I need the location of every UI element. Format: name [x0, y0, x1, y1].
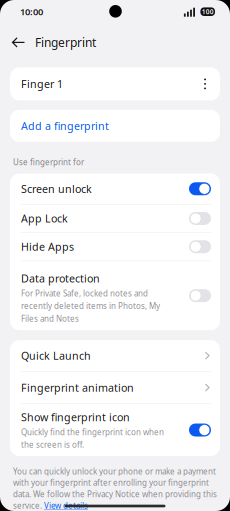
staticText: Use fingerprint for — [13, 157, 84, 167]
button[interactable]: Show fingerprint icon — [10, 404, 220, 456]
button[interactable]: App Lock — [10, 205, 220, 232]
staticText: Quick Launch — [21, 348, 91, 363]
button[interactable]: View details — [44, 500, 88, 511]
button[interactable]: Add a fingerprint — [10, 110, 220, 142]
button[interactable]: Hide Apps — [10, 233, 220, 260]
staticText: with your fingerprint after enrolling yo… — [13, 477, 209, 488]
button[interactable]: Back — [12, 31, 24, 53]
staticText: Finger 1 — [21, 77, 63, 91]
staticText: App Lock — [21, 211, 68, 226]
staticText: View details — [44, 500, 88, 511]
staticText: Data protection — [21, 271, 100, 285]
staticText: Add a fingerprint — [21, 119, 109, 133]
staticText: Show fingerprint icon — [21, 410, 130, 424]
button[interactable]: Data protection — [10, 261, 220, 330]
button[interactable]: Screen unlock — [10, 173, 220, 204]
staticText: Fingerprint — [35, 34, 96, 50]
button[interactable]: Fingerprint animation — [10, 372, 220, 403]
staticText: 10:00 — [20, 5, 43, 18]
button[interactable]: Finger 1 — [10, 67, 220, 100]
staticText: data. We follow the Privacy Notice when … — [13, 489, 217, 499]
staticText: You can quickly unlock your phone or mak… — [13, 466, 216, 477]
staticText: Screen unlock — [21, 182, 92, 196]
staticText: For Private Safe, locked notes and recen… — [21, 288, 160, 324]
staticText: 100 — [202, 7, 214, 16]
staticText: Hide Apps — [21, 240, 74, 254]
staticText: Fingerprint animation — [21, 380, 134, 395]
staticText: Quickly find the fingerprint icon when t… — [21, 427, 164, 450]
button[interactable]: Quick Launch — [10, 340, 220, 371]
staticText: service. — [13, 500, 44, 511]
